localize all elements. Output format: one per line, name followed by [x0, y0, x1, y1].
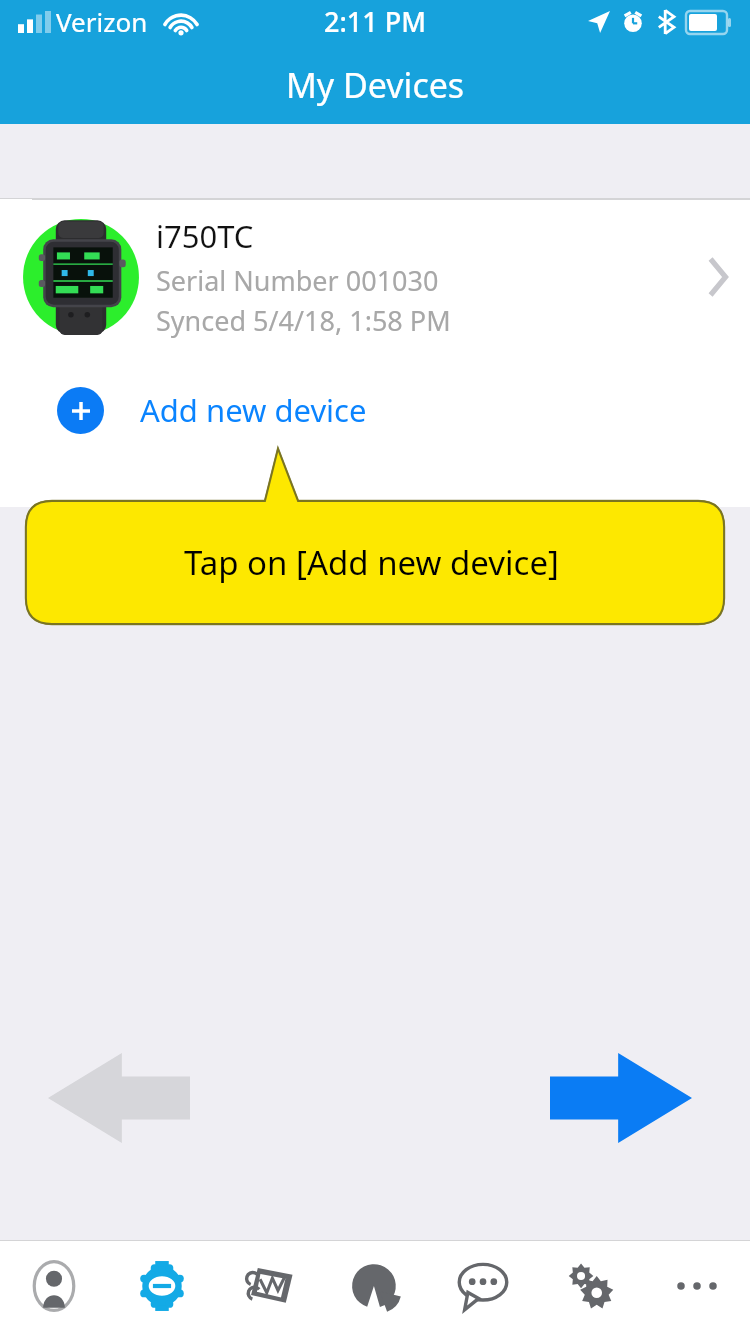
- button[interactable]: Tap on [Add new device]: [26, 449, 724, 624]
- staticText: Synced 5/4/18, 1:58 PM: [156, 302, 451, 339]
- button[interactable]: Next: [550, 1053, 692, 1143]
- staticText: i750TC: [156, 215, 254, 257]
- staticText: Verizon: [56, 4, 148, 39]
- button[interactable]: More: [643, 1241, 750, 1334]
- staticText: Serial Number 001030: [156, 262, 439, 299]
- button[interactable]: Previous: [48, 1053, 190, 1143]
- button[interactable]: Messages: [429, 1241, 536, 1334]
- button[interactable]: [26, 449, 724, 624]
- button[interactable]: i750TC: [0, 199, 750, 354]
- staticText: Add new device: [140, 389, 367, 431]
- button[interactable]: Add new device: [0, 355, 750, 465]
- staticText: 2:11 PM: [324, 3, 426, 40]
- button[interactable]: Logbook: [215, 1241, 322, 1334]
- button[interactable]: Profile: [0, 1241, 108, 1334]
- button[interactable]: Settings: [536, 1241, 643, 1334]
- button[interactable]: Statistics: [322, 1241, 429, 1334]
- staticText: My Devices: [286, 62, 465, 108]
- staticText: Tap on [Add new device]: [184, 540, 559, 585]
- button[interactable]: Devices: [108, 1241, 215, 1334]
